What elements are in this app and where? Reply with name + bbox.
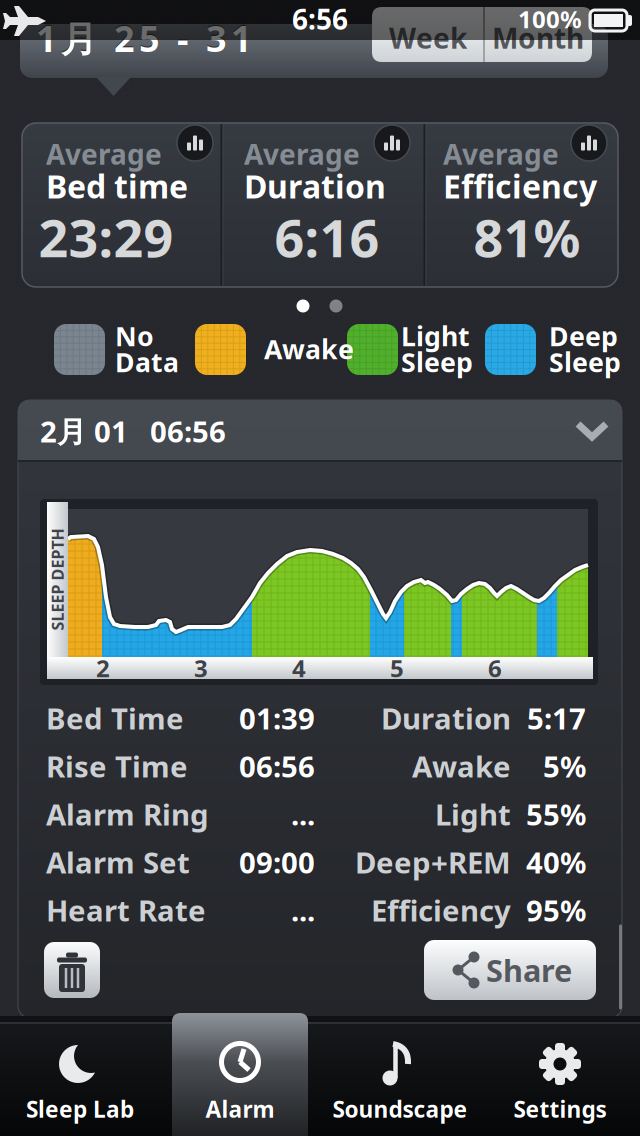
staticText: 4 [292, 652, 306, 684]
staticText: 1月 25 - 31 [36, 14, 252, 62]
staticText: Awake [264, 331, 354, 367]
staticText: Duration [244, 165, 386, 207]
button[interactable]: Delete [44, 942, 100, 998]
staticText: 6:56 [292, 0, 348, 38]
staticText: Bed Time [46, 698, 184, 737]
staticText: 06:56 [239, 746, 315, 785]
staticText: Soundscape [332, 1094, 467, 1124]
staticText: 09:00 [239, 842, 315, 881]
staticText: Bed time [46, 165, 188, 207]
staticText: Duration [381, 698, 511, 737]
staticText: ... [291, 890, 315, 929]
staticText: 2月 01 [40, 411, 128, 450]
staticText: Light [435, 794, 511, 833]
button[interactable]: Sleep Lab [0, 1022, 160, 1136]
staticText: Sleep Lab [26, 1094, 134, 1124]
staticText: 23:29 [38, 202, 173, 272]
staticText: 55% [526, 794, 586, 833]
staticText: 5:17 [527, 698, 586, 737]
staticText: 5 [390, 652, 404, 684]
staticText: 01:39 [239, 698, 315, 737]
staticText: Deep+REM [355, 842, 511, 881]
button[interactable]: Week [372, 7, 484, 62]
staticText: Alarm [205, 1094, 274, 1124]
button[interactable]: Alarm [172, 1013, 308, 1136]
staticText: Heart Rate [46, 890, 206, 929]
staticText: Data [115, 344, 179, 380]
staticText: Alarm Set [46, 842, 190, 881]
button[interactable]: Collapse [568, 416, 616, 446]
staticText: 40% [526, 842, 586, 881]
button[interactable]: Efficiency statistics [571, 125, 607, 161]
staticText: 81% [473, 202, 580, 272]
staticText: Light [401, 318, 470, 354]
button[interactable]: Settings [480, 1022, 640, 1136]
staticText: 3 [194, 652, 208, 684]
staticText: SLEEP DEPTH [6, 569, 108, 590]
button[interactable]: Duration statistics [374, 125, 410, 161]
button[interactable]: Soundscape [320, 1022, 480, 1136]
staticText: ... [291, 794, 315, 833]
staticText: Share [486, 950, 572, 990]
staticText: Average [46, 135, 162, 173]
staticText: Alarm Ring [46, 794, 209, 833]
staticText: 95% [526, 890, 586, 929]
staticText: Efficiency [443, 165, 597, 207]
button[interactable]: Share [424, 940, 596, 1000]
staticText: Average [244, 135, 360, 173]
staticText: 6:16 [274, 202, 379, 272]
staticText: Awake [412, 746, 511, 785]
staticText: Settings [513, 1094, 606, 1124]
staticText: Average [443, 135, 559, 173]
staticText: 06:56 [150, 411, 226, 450]
staticText: 100% [518, 3, 582, 35]
staticText: Sleep [401, 344, 473, 380]
staticText: Efficiency [371, 890, 511, 929]
button[interactable]: Bed time statistics [177, 125, 213, 161]
staticText: No [115, 318, 154, 354]
staticText: Week [389, 19, 467, 57]
staticText: 5% [543, 746, 586, 785]
staticText: Month [492, 19, 584, 57]
button[interactable]: Month [484, 7, 592, 62]
staticText: 2 [96, 652, 110, 684]
staticText: Sleep [549, 344, 621, 380]
staticText: 6 [488, 652, 502, 684]
staticText: Rise Time [46, 746, 188, 785]
staticText: Deep [549, 318, 618, 354]
